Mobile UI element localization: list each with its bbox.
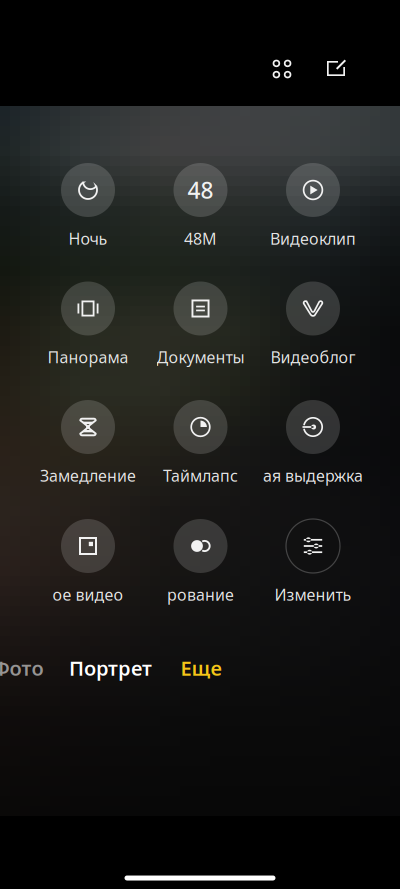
button[interactable]: Видеоклип bbox=[261, 163, 365, 246]
staticText: 48M bbox=[184, 228, 217, 249]
button[interactable]: Ночь bbox=[36, 163, 140, 246]
staticText: 48 bbox=[187, 175, 213, 205]
button[interactable]: Панорама bbox=[36, 281, 140, 364]
button[interactable]: Изменить bbox=[261, 519, 365, 602]
button[interactable]: Таймлапс bbox=[148, 400, 252, 483]
staticText: рование bbox=[167, 584, 234, 605]
button[interactable]: Замедление bbox=[36, 400, 140, 483]
staticText: Портрет bbox=[69, 655, 152, 681]
button[interactable]: Layout grid bbox=[262, 49, 302, 89]
button[interactable]: 48 bbox=[148, 163, 252, 246]
button[interactable]: ая выдержка bbox=[261, 400, 365, 483]
button[interactable]: Еще bbox=[180, 655, 221, 681]
button[interactable]: Фото bbox=[0, 655, 43, 681]
staticText: Изменить bbox=[274, 584, 351, 605]
button[interactable]: Edit modes bbox=[316, 49, 356, 89]
staticText: Видеоклип bbox=[270, 228, 356, 249]
button[interactable]: Портрет bbox=[69, 655, 152, 681]
staticText: ая выдержка bbox=[263, 465, 363, 486]
staticText: Еще bbox=[180, 655, 221, 681]
staticText: Панорама bbox=[47, 346, 128, 368]
staticText: Ночь bbox=[68, 228, 107, 249]
staticText: Таймлапс bbox=[163, 465, 238, 486]
button[interactable]: рование bbox=[148, 519, 252, 602]
button[interactable]: Видеоблог bbox=[261, 281, 365, 364]
staticText: Замедление bbox=[40, 465, 136, 486]
staticText: Фото bbox=[0, 655, 43, 681]
staticText: Документы bbox=[156, 346, 244, 368]
staticText: Видеоблог bbox=[270, 346, 355, 368]
staticText: ое видео bbox=[52, 584, 123, 605]
button[interactable]: ое видео bbox=[36, 519, 140, 602]
button[interactable]: Документы bbox=[148, 281, 252, 364]
